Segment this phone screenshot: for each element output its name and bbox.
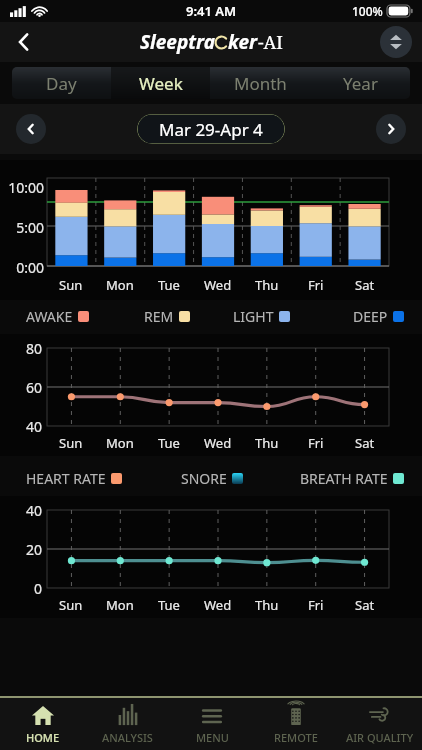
button[interactable]: Mar 29-Apr 4 [137, 114, 285, 144]
staticText: 40 [0, 417, 42, 436]
staticText: LIGHT [233, 307, 274, 326]
staticText: Sleeptra [140, 29, 215, 55]
staticText: DEEP [353, 307, 388, 326]
staticText: REM [144, 307, 174, 326]
staticText: BREATH RATE [300, 469, 388, 488]
staticText: AIR QUALITY [346, 730, 414, 745]
staticText: Fri [308, 596, 324, 614]
staticText: Tue [158, 276, 180, 294]
button[interactable]: AWAKE [26, 307, 89, 326]
staticText: 100% [352, 3, 383, 19]
staticText: Fri [308, 434, 324, 452]
button[interactable]: HOME [0, 698, 85, 750]
staticText: Mon [106, 596, 134, 614]
staticText: Thu [255, 276, 279, 294]
staticText: Week [139, 72, 183, 95]
staticText: Sun [59, 434, 83, 452]
button[interactable]: SNORE [181, 469, 243, 488]
staticText: Sat [355, 276, 375, 294]
button[interactable]: Previous week [16, 114, 46, 144]
staticText: 60 [0, 378, 42, 397]
staticText: 0:00 [0, 258, 44, 277]
button[interactable]: DEEP [353, 307, 404, 326]
button[interactable]: Day [12, 67, 111, 99]
button[interactable]: AIR QUALITY [338, 698, 422, 750]
staticText: 10:00 [0, 178, 44, 197]
staticText: Sun [59, 596, 83, 614]
staticText: ANALYSIS [102, 730, 153, 745]
staticText: SNORE [181, 469, 227, 488]
staticText: Year [343, 72, 378, 95]
staticText: Mar 29-Apr 4 [159, 118, 263, 141]
button[interactable]: REM [144, 307, 190, 326]
button[interactable]: BREATH RATE [300, 469, 404, 488]
button[interactable]: Back [4, 22, 44, 62]
button[interactable]: Adjust value [380, 26, 412, 58]
staticText: Wed [204, 434, 232, 452]
staticText: MENU [196, 730, 229, 745]
staticText: Month [234, 72, 287, 95]
staticText: Sun [59, 276, 83, 294]
staticText: 0 [0, 579, 42, 598]
staticText: 20 [0, 540, 42, 559]
staticText: HOME [26, 730, 60, 745]
staticText: 5:00 [0, 218, 44, 237]
button[interactable]: ANALYSIS [85, 698, 170, 750]
button[interactable]: MENU [170, 698, 254, 750]
staticText: 9:41 AM [186, 2, 237, 20]
staticText: ker [228, 29, 258, 55]
staticText: Tue [158, 434, 180, 452]
staticText: Thu [255, 596, 279, 614]
staticText: Mon [106, 434, 134, 452]
staticText: Wed [204, 276, 232, 294]
button[interactable]: Next week [376, 114, 406, 144]
staticText: 80 [0, 339, 42, 358]
button[interactable]: Month [210, 67, 310, 99]
staticText: Sat [355, 434, 375, 452]
staticText: Fri [308, 276, 324, 294]
staticText: Sat [355, 596, 375, 614]
staticText: HEART RATE [26, 469, 106, 488]
staticText: Thu [255, 434, 279, 452]
staticText: AWAKE [26, 307, 73, 326]
staticText: REMOTE [274, 730, 318, 745]
button[interactable]: LIGHT [233, 307, 290, 326]
button[interactable]: REMOTE [254, 698, 338, 750]
staticText: Wed [204, 596, 232, 614]
staticText: 40 [0, 501, 42, 520]
staticText: Day [46, 72, 77, 95]
button[interactable]: Year [310, 67, 410, 99]
staticText: Mon [106, 276, 134, 294]
button[interactable]: HEART RATE [26, 469, 122, 488]
staticText: -AI [258, 30, 283, 55]
button[interactable]: Week [111, 67, 210, 99]
staticText: Tue [158, 596, 180, 614]
